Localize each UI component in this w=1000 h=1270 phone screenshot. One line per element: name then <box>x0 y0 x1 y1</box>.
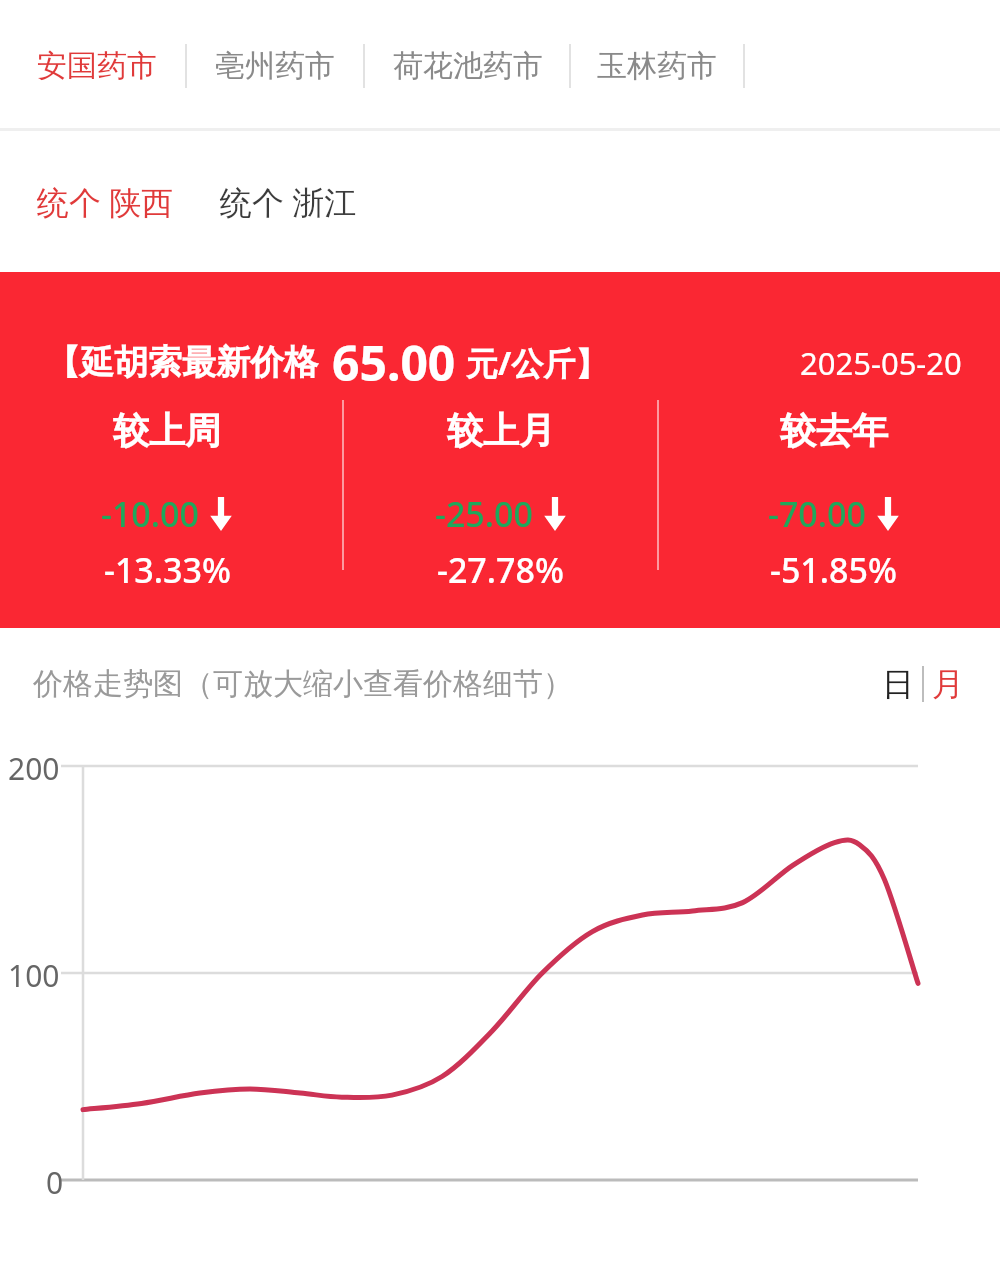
staticText: 统个 陕西 <box>37 180 174 224</box>
staticText: 0 <box>46 1162 64 1203</box>
staticText: 安国药市 <box>37 47 157 85</box>
staticText: -13.33% <box>104 547 231 593</box>
button[interactable]: 安国药市 <box>33 37 161 95</box>
staticText: 玉林药市 <box>597 47 717 85</box>
staticText: 亳州药市 <box>215 47 335 85</box>
staticText: -25.00 <box>435 491 533 537</box>
staticText: 【延胡索最新价格 <box>46 341 318 384</box>
staticText: 价格走势图（可放大缩小查看价格细节） <box>33 665 573 703</box>
staticText: 65.00 <box>332 330 456 395</box>
staticText: -10.00 <box>101 491 199 537</box>
staticText: 较去年 <box>780 408 888 453</box>
staticText: 日 <box>882 664 914 704</box>
button[interactable]: 玉林药市 <box>593 37 721 95</box>
button[interactable]: 亳州药市 <box>211 37 339 95</box>
staticText: 2025-05-20 <box>800 342 962 384</box>
staticText: -51.85% <box>770 547 897 593</box>
staticText: 元/公斤】 <box>466 341 608 385</box>
staticText: 200 <box>8 748 60 789</box>
staticText: -27.78% <box>437 547 564 593</box>
staticText: 月 <box>932 664 964 704</box>
button[interactable]: 统个 陕西 <box>33 168 178 236</box>
staticText: 较上月 <box>447 408 555 453</box>
button[interactable]: 统个 浙江 <box>216 168 361 236</box>
staticText: -70.00 <box>768 491 866 537</box>
staticText: 较上周 <box>113 408 221 453</box>
button[interactable]: 日 <box>874 656 922 712</box>
button[interactable]: 月 <box>924 656 972 712</box>
button[interactable]: 荷花池药市 <box>389 37 547 95</box>
staticText: 荷花池药市 <box>393 47 543 85</box>
staticText: 100 <box>8 955 60 996</box>
staticText: 统个 浙江 <box>220 180 357 224</box>
